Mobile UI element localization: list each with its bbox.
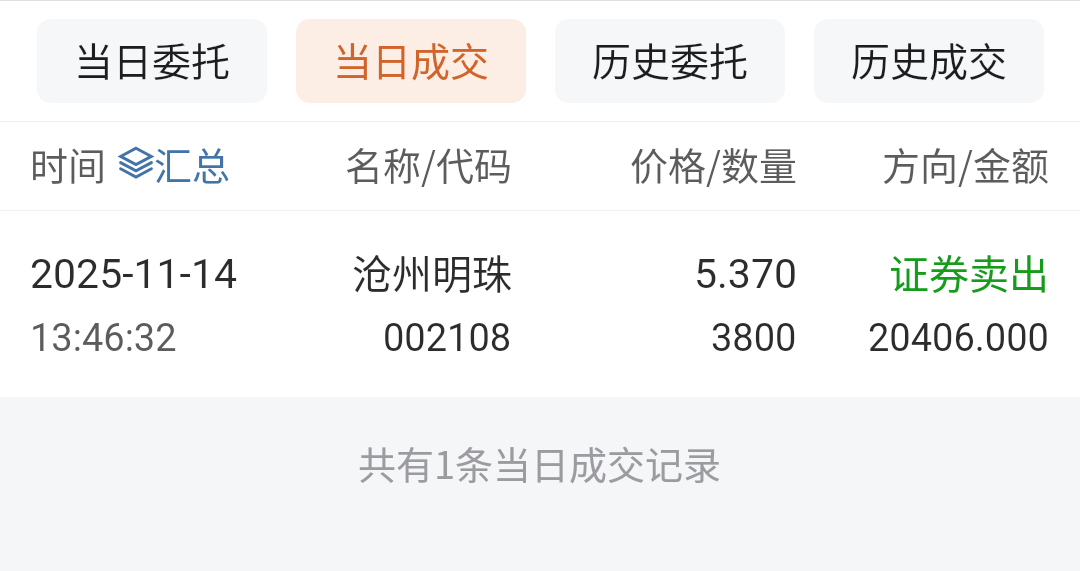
staticText: 共有1条当日成交记录 — [358, 435, 722, 490]
staticText: 20406.000 — [868, 316, 1049, 361]
staticText: 价格/数量 — [512, 136, 797, 191]
staticText: 方向/金额 — [797, 136, 1049, 191]
staticText: 13:46:32 — [30, 316, 177, 361]
button[interactable]: 时间 — [30, 122, 280, 204]
staticText: 名称/代码 — [280, 136, 512, 191]
staticText: 历史委托 — [592, 31, 749, 87]
other: 汇总 — [119, 143, 153, 183]
staticText: 5.370 — [694, 250, 797, 298]
staticText: 汇总 — [154, 136, 231, 191]
staticText: 证券卖出 — [889, 243, 1049, 293]
staticText: 历史成交 — [851, 31, 1008, 87]
staticText: 沧州明珠 — [352, 243, 512, 293]
staticText: 当日成交 — [333, 31, 490, 87]
staticText: 2025-11-14 — [30, 250, 238, 298]
button[interactable]: 历史委托 — [555, 19, 785, 103]
button[interactable]: 当日成交 — [296, 19, 526, 103]
button[interactable]: 当日委托 — [37, 19, 267, 103]
staticText: 002108 — [383, 316, 512, 361]
staticText: 时间 — [30, 136, 107, 191]
button[interactable]: 2025-11-14 — [0, 211, 1080, 397]
staticText: 3800 — [711, 316, 797, 361]
staticText: 当日委托 — [74, 31, 231, 87]
button[interactable]: 历史成交 — [814, 19, 1044, 103]
